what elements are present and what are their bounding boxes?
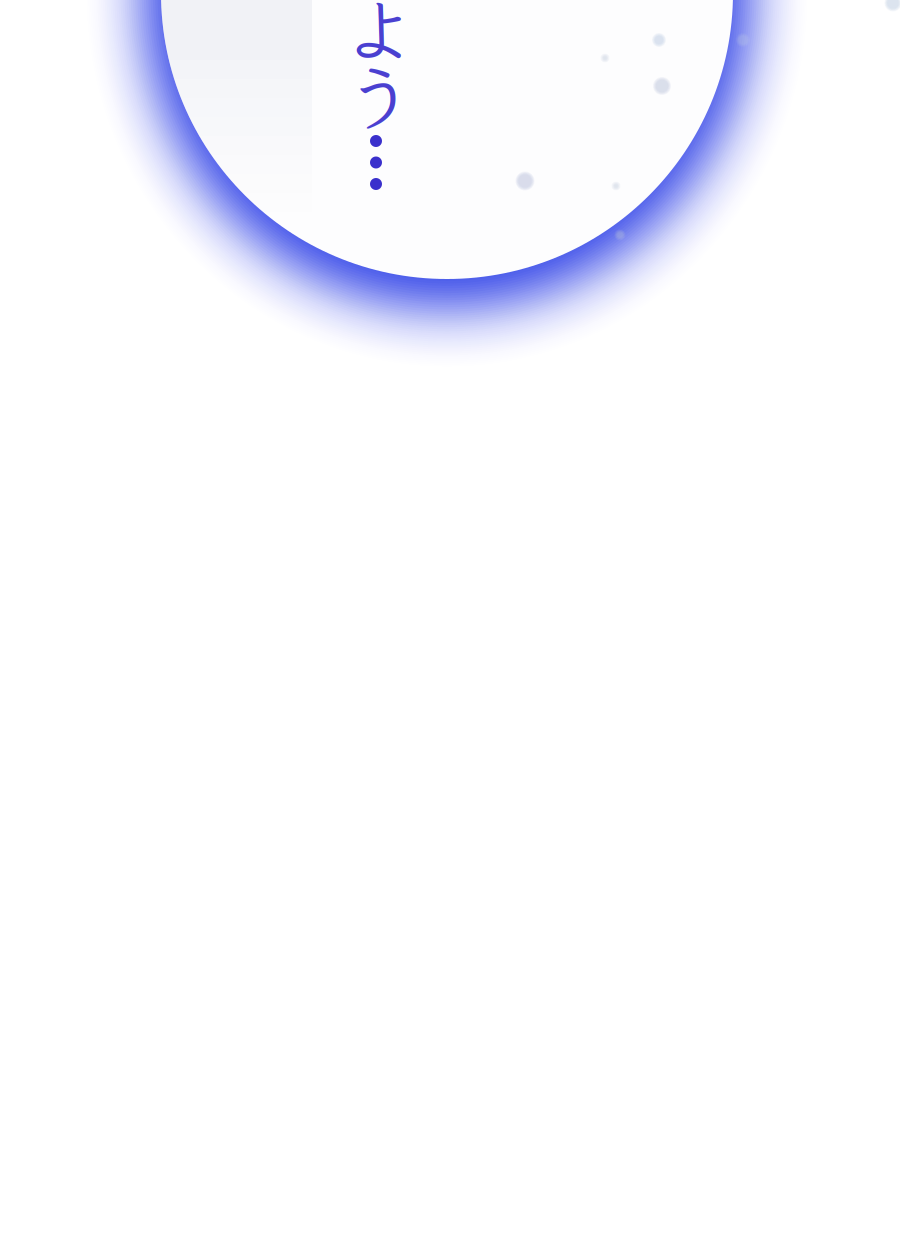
staticText: う: [342, 39, 415, 145]
staticText: よ: [342, 0, 415, 78]
